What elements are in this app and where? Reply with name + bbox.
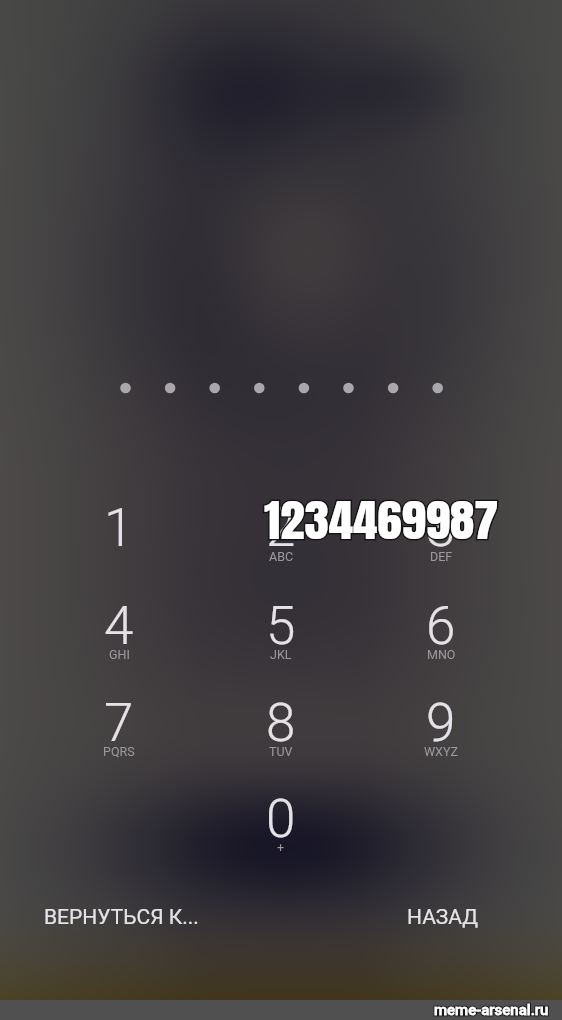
staticText: meme-arsenal.ru xyxy=(434,1001,549,1019)
button[interactable]: 3 xyxy=(371,497,511,589)
button[interactable]: 7 xyxy=(49,692,189,784)
button[interactable]: 2 xyxy=(211,497,351,589)
staticText: GHI xyxy=(109,647,130,662)
staticText: 3 xyxy=(426,497,456,559)
staticText: WXYZ xyxy=(424,744,458,759)
button[interactable]: 1 xyxy=(49,497,189,589)
staticText: 5 xyxy=(266,595,296,657)
staticText: DEF xyxy=(430,549,453,564)
staticText: MNO xyxy=(427,647,456,662)
staticText: 7 xyxy=(104,692,134,754)
staticText: НАЗАД xyxy=(407,905,479,930)
button[interactable]: 8 xyxy=(211,692,351,784)
staticText: ABC xyxy=(269,549,294,564)
staticText: 8 xyxy=(266,692,296,754)
staticText: 1234469987 xyxy=(264,486,499,554)
button[interactable]: 9 xyxy=(371,692,511,784)
staticText: ВЕРНУТЬСЯ К... xyxy=(44,905,199,930)
button[interactable]: 6 xyxy=(371,595,511,687)
staticText: 0 xyxy=(266,788,296,850)
button[interactable]: 4 xyxy=(49,595,189,687)
staticText: 1 xyxy=(104,497,134,559)
staticText: TUV xyxy=(269,744,293,759)
staticText: 1234469987 xyxy=(264,486,499,554)
button[interactable]: НАЗАД xyxy=(281,895,562,939)
staticText: 9 xyxy=(426,692,456,754)
staticText: 4 xyxy=(104,595,134,657)
button[interactable]: 0 xyxy=(211,788,351,880)
staticText: 2 xyxy=(266,497,296,559)
staticText: JKL xyxy=(270,647,292,662)
staticText: meme-arsenal.ru xyxy=(434,1001,549,1019)
staticText: + xyxy=(277,840,285,855)
staticText: PQRS xyxy=(103,744,135,759)
staticText: 6 xyxy=(426,595,456,657)
button[interactable]: 5 xyxy=(211,595,351,687)
button[interactable]: ВЕРНУТЬСЯ К... xyxy=(0,895,281,939)
